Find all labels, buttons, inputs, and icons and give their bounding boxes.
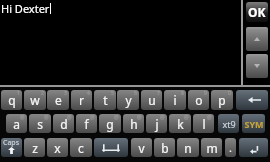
button[interactable]: Symbols xyxy=(242,114,265,133)
button[interactable]: b xyxy=(154,138,175,157)
staticText: a xyxy=(13,116,20,132)
staticText: 7 xyxy=(157,90,160,97)
button[interactable]: f xyxy=(76,114,97,133)
staticText: v xyxy=(138,140,145,156)
staticText: y xyxy=(125,92,132,108)
button[interactable]: v xyxy=(131,138,152,157)
button[interactable]: Backspace xyxy=(236,90,268,110)
button[interactable]: Toggle XT9 xyxy=(218,114,239,133)
button[interactable]: Scroll up xyxy=(246,27,268,51)
button[interactable]: w xyxy=(24,90,46,110)
staticText: n xyxy=(184,140,192,156)
staticText: 8 xyxy=(181,90,184,97)
staticText: @ xyxy=(160,114,165,121)
button[interactable]: i xyxy=(164,90,186,110)
staticText: 6 xyxy=(134,90,137,97)
staticText: 5 xyxy=(111,90,114,97)
button[interactable]: h xyxy=(123,114,144,133)
button[interactable]: k xyxy=(169,114,191,133)
button[interactable]: p xyxy=(211,90,233,110)
staticText: 3 xyxy=(64,90,67,97)
staticText: j xyxy=(155,116,159,132)
staticText: @ xyxy=(114,114,119,121)
staticText: h xyxy=(130,116,138,132)
staticText: u xyxy=(148,92,156,108)
staticText: p xyxy=(218,92,226,108)
button[interactable]: q xyxy=(1,90,22,110)
staticText: x xyxy=(54,140,61,156)
button[interactable]: s xyxy=(29,114,51,133)
staticText: @ xyxy=(44,114,49,121)
button[interactable]: Hi Dexter xyxy=(0,0,241,86)
button[interactable]: c xyxy=(70,138,92,157)
staticText: Caps xyxy=(3,138,20,148)
staticText: . xyxy=(229,140,232,155)
staticText: b xyxy=(161,140,169,156)
staticText: @ xyxy=(137,114,142,121)
staticText: 2 xyxy=(41,90,44,97)
button[interactable]: OK xyxy=(246,2,268,22)
staticText: i xyxy=(173,92,177,108)
staticText: c xyxy=(78,140,84,156)
staticText: f xyxy=(84,116,89,132)
staticText: @ xyxy=(184,114,189,121)
button[interactable]: Scroll down xyxy=(246,54,268,78)
button[interactable]: z xyxy=(24,138,45,157)
staticText: 4 xyxy=(87,90,90,97)
staticText: t xyxy=(103,92,108,108)
button[interactable]: u xyxy=(141,90,162,110)
button[interactable]: Enter xyxy=(239,138,268,157)
button[interactable]: l xyxy=(193,114,214,133)
button[interactable]: . xyxy=(225,138,236,157)
button[interactable]: a xyxy=(6,114,27,133)
staticText: 1 xyxy=(17,90,20,97)
button[interactable]: o xyxy=(188,90,209,110)
staticText: @ xyxy=(90,114,95,121)
button[interactable]: x xyxy=(47,138,68,157)
staticText: e xyxy=(55,92,62,108)
staticText: d xyxy=(60,116,68,132)
button[interactable]: e xyxy=(47,90,69,110)
staticText: OK xyxy=(248,4,266,20)
staticText: o xyxy=(195,92,203,108)
staticText: g xyxy=(106,116,114,132)
staticText: SYM xyxy=(244,118,264,130)
button[interactable]: r xyxy=(71,90,92,110)
staticText: s xyxy=(37,116,43,132)
staticText: @ xyxy=(67,114,72,121)
staticText: k xyxy=(177,116,184,132)
staticText: @ xyxy=(207,114,212,121)
button[interactable]: Caps lock xyxy=(1,138,22,157)
button[interactable]: d xyxy=(53,114,74,133)
staticText: r xyxy=(79,92,84,108)
staticText: m xyxy=(206,140,218,156)
button[interactable]: m xyxy=(201,138,222,157)
button[interactable]: n xyxy=(177,138,199,157)
staticText: Hi Dexter xyxy=(1,1,50,16)
staticText: xt9 xyxy=(222,118,236,130)
staticText: q xyxy=(8,92,16,108)
staticText: z xyxy=(32,140,38,156)
button[interactable]: y xyxy=(117,90,139,110)
staticText: 9 xyxy=(204,90,207,97)
button[interactable]: g xyxy=(99,114,121,133)
staticText: @ xyxy=(20,114,25,121)
staticText: l xyxy=(202,116,206,132)
button[interactable]: Space xyxy=(94,138,128,157)
staticText: w xyxy=(30,92,40,108)
staticText: 0 xyxy=(228,90,231,97)
button[interactable]: j xyxy=(146,114,167,133)
button[interactable]: t xyxy=(94,90,116,110)
